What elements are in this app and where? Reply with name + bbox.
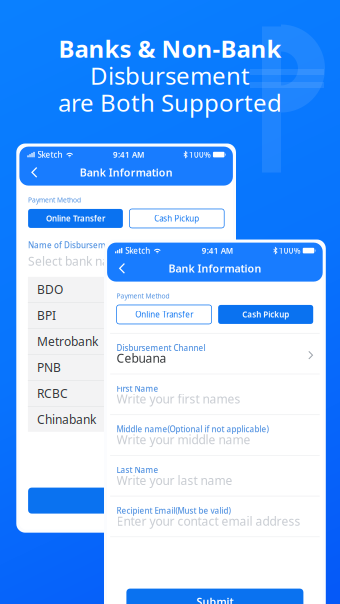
staticText: Name of Disbursement Bank <box>28 240 140 251</box>
staticText: Disbursement <box>90 60 250 91</box>
staticText: First Name <box>117 383 159 394</box>
staticText: Bank Information <box>80 165 173 179</box>
staticText: 100% <box>189 149 211 160</box>
staticText: RCBC <box>37 385 68 401</box>
staticText: Metrobank <box>37 333 98 349</box>
staticText: 9:41 AM <box>113 149 144 160</box>
staticText: Payment Method <box>28 196 81 204</box>
button[interactable]: BDO <box>28 277 124 302</box>
staticText: Online Transfer <box>46 213 105 224</box>
staticText: Write your first names <box>117 391 241 407</box>
staticText: PNB <box>37 359 61 375</box>
staticText: 9:41 AM <box>202 245 233 256</box>
button[interactable]: Back <box>109 256 135 280</box>
button[interactable]: BPI <box>28 303 124 328</box>
button[interactable] <box>28 488 224 514</box>
staticText: Cash Pickup <box>242 309 289 320</box>
button[interactable]: Chinabank <box>28 407 124 432</box>
button[interactable]: Submit <box>126 589 303 604</box>
staticText: Payment Method <box>117 292 170 300</box>
staticText: Write your last name <box>117 472 233 488</box>
button[interactable]: Metrobank <box>28 329 124 354</box>
staticText: Submit <box>196 594 233 604</box>
staticText: Last Name <box>117 465 159 475</box>
staticText: Banks & Non-Bank <box>58 33 281 64</box>
staticText: Cebuana <box>117 350 167 366</box>
button[interactable]: Online Transfer <box>28 209 123 228</box>
button[interactable]: Online Transfer <box>117 305 212 324</box>
staticText: are Both Supported <box>58 87 282 118</box>
staticText: Enter your contact email address <box>117 513 301 529</box>
staticText: Recipient Email(Must be valid) <box>117 505 231 516</box>
button[interactable]: Cash Pickup <box>218 305 313 324</box>
button[interactable]: Back <box>21 160 47 184</box>
staticText: Write your middle name <box>117 432 251 447</box>
staticText: Bank Information <box>168 261 261 275</box>
button[interactable]: Cash Pickup <box>129 209 224 228</box>
staticText: BPI <box>37 307 56 323</box>
staticText: Cash Pickup <box>154 213 199 224</box>
staticText: Online Transfer <box>135 309 193 320</box>
staticText: Sketch <box>38 149 63 160</box>
staticText: Disbursement Channel <box>117 342 206 353</box>
button[interactable]: PNB <box>28 355 124 380</box>
staticText: Select bank name <box>28 253 127 269</box>
staticText: BDO <box>37 281 63 297</box>
button[interactable]: RCBC <box>28 381 124 406</box>
staticText: 100% <box>279 245 301 256</box>
staticText: Chinabank <box>37 411 96 427</box>
staticText: Sketch <box>125 245 150 256</box>
staticText: Middle name(Optional if not applicable) <box>117 424 269 434</box>
